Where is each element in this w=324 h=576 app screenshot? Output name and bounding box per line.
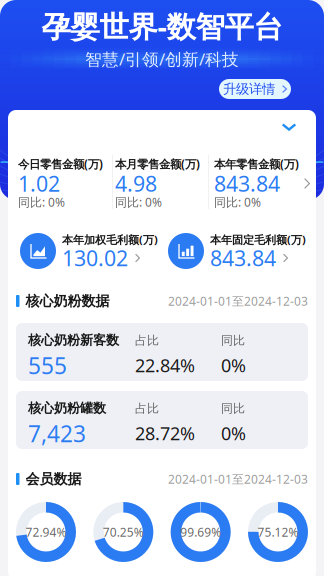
staticText: 占比 <box>135 401 159 416</box>
staticText: 0% <box>221 353 246 377</box>
staticText: 同比: 0% <box>115 194 162 210</box>
staticText: 555 <box>28 350 67 381</box>
staticText: 今日零售金额(万) <box>18 156 103 172</box>
staticText: 本年零售金额(万) <box>214 156 299 172</box>
staticText: 1.02 <box>18 169 60 198</box>
staticText: 7,423 <box>28 418 86 449</box>
staticText: 22.84% <box>135 353 195 377</box>
staticText: 0% <box>221 421 246 445</box>
staticText: 核心奶粉罐数 <box>28 400 106 416</box>
staticText: 130.02 <box>62 243 128 273</box>
button[interactable]: Collapse <box>274 115 304 139</box>
staticText: 72.94% <box>25 524 66 540</box>
staticText: 核心奶粉数据 <box>25 292 109 310</box>
staticText: 同比 <box>221 333 245 348</box>
staticText: 2024-01-01至2024-12-03 <box>168 293 308 309</box>
staticText: 2024-01-01至2024-12-03 <box>168 471 308 487</box>
staticText: 同比 <box>221 401 245 416</box>
staticText: 同比: 0% <box>214 194 261 210</box>
staticText: 核心奶粉新客数 <box>28 332 119 348</box>
staticText: 智慧/引领/创新/科技 <box>85 48 239 70</box>
button[interactable]: 升级详情 <box>219 79 291 99</box>
staticText: 会员数据 <box>25 470 81 488</box>
staticText: 同比: 0% <box>18 194 65 210</box>
staticText: 升级详情 <box>223 81 275 97</box>
staticText: 843.84 <box>210 243 276 273</box>
staticText: 75.12% <box>257 524 298 540</box>
staticText: 占比 <box>135 333 159 348</box>
staticText: 99.69% <box>180 524 221 540</box>
staticText: 孕婴世界-数智平台 <box>41 6 282 46</box>
staticText: 本年固定毛利额(万) <box>210 232 306 247</box>
staticText: 4.98 <box>115 169 157 198</box>
staticText: 70.25% <box>103 524 144 540</box>
staticText: 843.84 <box>214 169 280 198</box>
staticText: 28.72% <box>135 421 195 445</box>
staticText: 本年加权毛利额(万) <box>62 232 158 247</box>
staticText: 本月零售金额(万) <box>115 156 200 172</box>
